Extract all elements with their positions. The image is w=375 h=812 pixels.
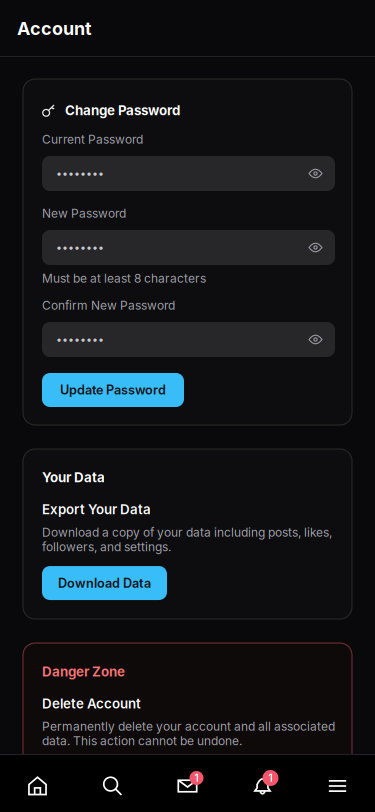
staticText: 1: [194, 772, 198, 784]
staticText: Update Password: [60, 382, 166, 398]
staticText: Delete Account: [42, 695, 141, 712]
button[interactable]: Show Confirm New Password: [302, 324, 329, 354]
staticText: ••••••••: [56, 241, 104, 254]
staticText: ••••••••: [56, 167, 104, 180]
button[interactable]: Show New Password: [302, 232, 329, 262]
button[interactable]: Menu: [300, 754, 375, 812]
staticText: Change Password: [65, 102, 180, 118]
button[interactable]: Search: [75, 754, 150, 812]
button[interactable]: Notifications: [225, 754, 300, 812]
button[interactable]: Download Data: [42, 566, 167, 600]
staticText: Danger Zone: [42, 663, 125, 680]
button[interactable]: Show Current Password: [302, 158, 329, 188]
button[interactable]: Delete Account: [42, 760, 163, 794]
staticText: Current Password: [42, 132, 143, 147]
button[interactable]: Home: [0, 754, 75, 812]
staticText: Permanently delete your account and all …: [42, 719, 335, 748]
staticText: Delete Account: [57, 769, 148, 785]
staticText: Download a copy of your data including p…: [42, 525, 332, 554]
button[interactable]: Update Password: [42, 373, 184, 407]
staticText: Export Your Data: [42, 501, 151, 517]
staticText: Must be at least 8 characters: [42, 271, 206, 286]
button[interactable]: Messages: [150, 754, 225, 812]
staticText: 1: [268, 772, 272, 784]
staticText: Your Data: [42, 469, 105, 485]
staticText: New Password: [42, 206, 126, 221]
staticText: Account: [17, 18, 92, 39]
staticText: ••••••••: [56, 333, 104, 346]
staticText: Download Data: [58, 575, 151, 591]
staticText: Confirm New Password: [42, 298, 175, 313]
